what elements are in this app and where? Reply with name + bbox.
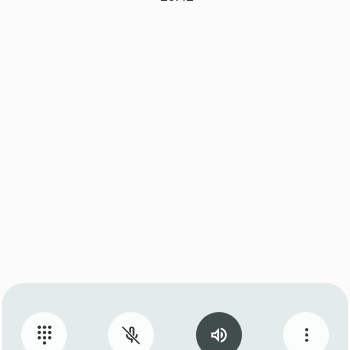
button[interactable]: Speaker (196, 312, 242, 350)
staticText: 20:42 (160, 0, 194, 5)
button[interactable]: Dialpad (21, 312, 67, 350)
button[interactable]: More options (283, 312, 329, 350)
button[interactable]: Mute microphone (108, 312, 154, 350)
